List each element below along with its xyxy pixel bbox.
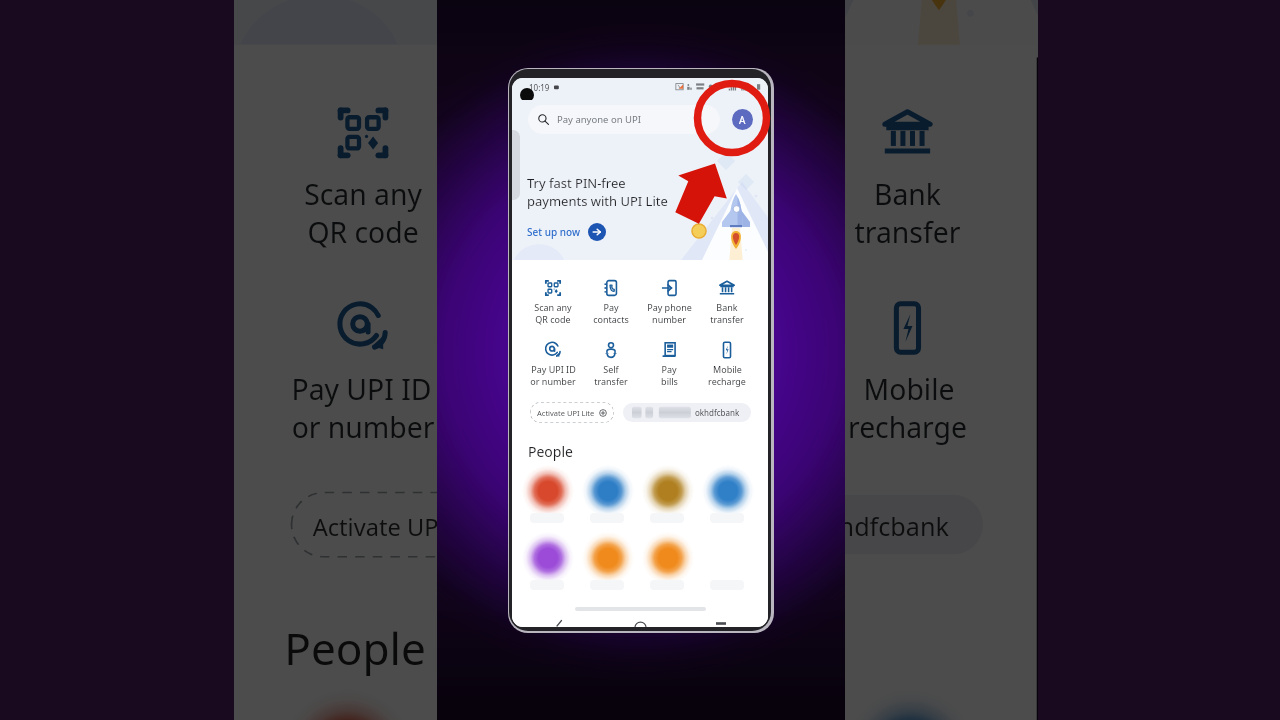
button[interactable] bbox=[522, 532, 582, 594]
button[interactable]: Bank bbox=[698, 277, 756, 328]
staticText: Try fast PIN-free bbox=[527, 174, 626, 192]
button[interactable] bbox=[265, 690, 451, 720]
staticText: transfer bbox=[489, 407, 596, 444]
button[interactable]: Self bbox=[582, 339, 640, 390]
staticText: Mobile bbox=[713, 363, 742, 375]
staticText: Pay bbox=[517, 174, 568, 212]
staticText: number bbox=[671, 211, 778, 249]
staticText: or number bbox=[530, 375, 576, 387]
button[interactable]: Scan any bbox=[272, 98, 451, 259]
button[interactable]: Bank bbox=[816, 98, 999, 259]
staticText: Activate UPI Lite bbox=[313, 510, 495, 542]
staticText: Bank bbox=[873, 174, 942, 212]
staticText: Bank bbox=[716, 301, 738, 313]
staticText: Activate UPI Lite bbox=[537, 408, 595, 418]
staticText: transfer bbox=[710, 313, 744, 325]
button[interactable] bbox=[829, 690, 1018, 720]
button[interactable]: Activate UPI Lite bbox=[291, 492, 555, 558]
button[interactable]: Pay bbox=[634, 293, 816, 454]
staticText: transfer bbox=[854, 211, 961, 249]
staticText: People bbox=[528, 442, 573, 461]
button[interactable]: Pay UPI ID bbox=[272, 293, 451, 454]
button[interactable] bbox=[702, 465, 762, 527]
staticText: Pay anyone on UPI bbox=[557, 113, 641, 126]
button[interactable]: okhdfcbank bbox=[623, 403, 751, 422]
staticText: 10:19 bbox=[529, 82, 550, 93]
staticText: Scan any bbox=[303, 174, 423, 212]
staticText: Pay UPI ID bbox=[291, 369, 432, 407]
staticText: bills bbox=[700, 407, 753, 444]
staticText: Set up now bbox=[527, 225, 580, 239]
staticText: Self bbox=[603, 363, 619, 375]
staticText: A bbox=[739, 113, 746, 127]
staticText: recharge bbox=[848, 407, 967, 444]
staticText: transfer bbox=[594, 375, 628, 387]
button[interactable]: Pay phone bbox=[634, 98, 816, 259]
button[interactable]: Pay bbox=[451, 98, 634, 259]
staticText: QR code bbox=[306, 211, 420, 249]
button[interactable]: Back bbox=[554, 616, 564, 626]
staticText: Pay phone bbox=[656, 174, 797, 212]
button[interactable] bbox=[582, 465, 642, 527]
staticText: or number bbox=[291, 407, 435, 444]
button[interactable]: Pay phone bbox=[640, 277, 698, 328]
staticText: okhdfcbank bbox=[695, 407, 740, 418]
button[interactable]: Set up now bbox=[527, 223, 606, 241]
staticText: contacts bbox=[593, 313, 629, 325]
staticText: Scan any bbox=[534, 301, 572, 313]
button[interactable]: okhdfcbank bbox=[583, 495, 983, 555]
staticText: Self bbox=[517, 369, 568, 407]
staticText: Pay phone bbox=[647, 301, 692, 313]
staticText: contacts bbox=[486, 211, 599, 249]
button[interactable]: Self bbox=[451, 293, 634, 454]
button[interactable]: Activate UPI Lite bbox=[530, 402, 614, 423]
button[interactable]: Recents bbox=[716, 616, 726, 626]
staticText: Mobile bbox=[863, 369, 955, 407]
staticText: okhdfcbank bbox=[810, 507, 951, 542]
button[interactable] bbox=[522, 465, 582, 527]
staticText: Pay UPI ID bbox=[531, 363, 576, 375]
staticText: recharge bbox=[708, 375, 746, 387]
staticText: number bbox=[652, 313, 686, 325]
button[interactable]: Scan any bbox=[524, 277, 582, 328]
staticText: Pay bbox=[661, 363, 677, 375]
staticText: Pay bbox=[603, 301, 619, 313]
button[interactable] bbox=[642, 532, 702, 594]
button[interactable]: Mobile bbox=[816, 293, 999, 454]
staticText: QR code bbox=[535, 313, 571, 325]
staticText: payments with UPI Lite bbox=[527, 192, 668, 210]
button[interactable] bbox=[582, 532, 642, 594]
staticText: People bbox=[284, 617, 426, 677]
button[interactable]: Pay bbox=[582, 277, 640, 328]
button[interactable]: Pay bbox=[640, 339, 698, 390]
button[interactable]: Pay UPI ID bbox=[524, 339, 582, 390]
button[interactable]: Mobile bbox=[698, 339, 756, 390]
staticText: Pay bbox=[700, 369, 750, 407]
button[interactable]: Pay anyone on UPI bbox=[528, 105, 720, 134]
button[interactable]: Profile bbox=[732, 109, 753, 130]
button[interactable]: Home bbox=[635, 616, 646, 627]
staticText: bills bbox=[661, 375, 678, 387]
button[interactable] bbox=[642, 465, 702, 527]
